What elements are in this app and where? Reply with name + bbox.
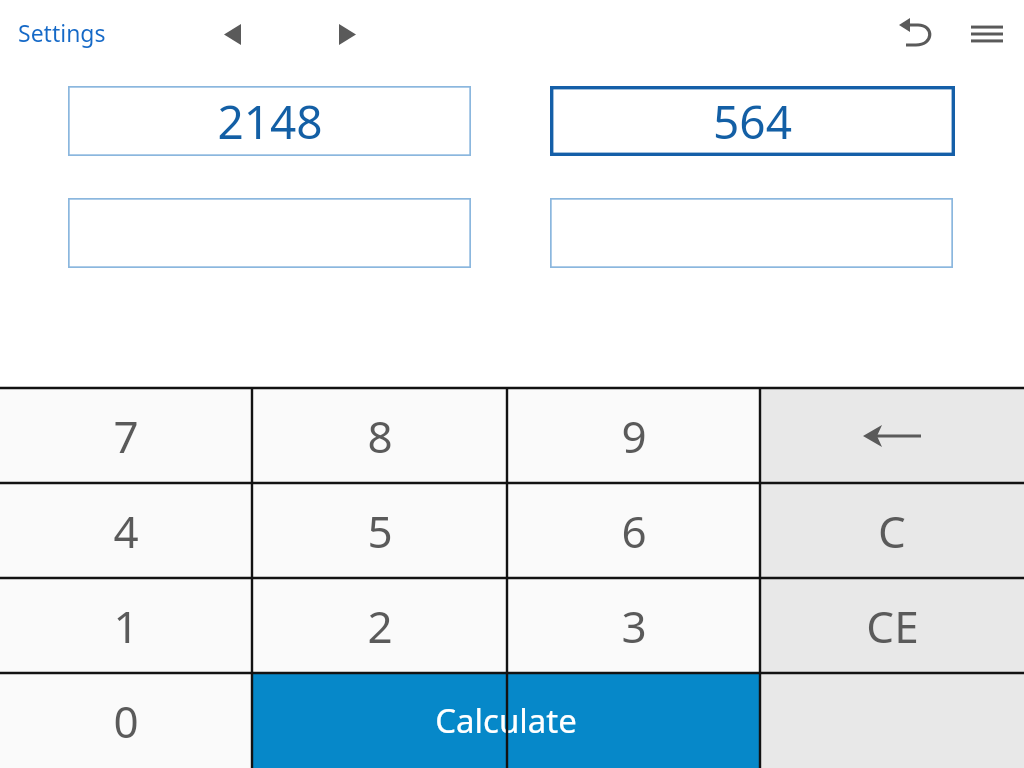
staticText: 5: [367, 501, 393, 561]
button[interactable]: Settings: [8, 11, 116, 54]
staticText: 9: [621, 406, 647, 466]
staticText: 4: [113, 501, 139, 561]
button[interactable]: Undo: [890, 9, 940, 59]
staticText: Calculate: [435, 698, 577, 743]
button[interactable]: 2148: [68, 86, 471, 156]
staticText: 0: [113, 691, 139, 751]
staticText: 6: [621, 501, 647, 561]
button[interactable]: [550, 198, 953, 268]
button[interactable]: 9: [507, 388, 760, 483]
staticText: CE: [866, 596, 919, 656]
staticText: 2148: [217, 90, 323, 153]
button[interactable]: Backspace: [760, 388, 1024, 483]
button[interactable]: Previous: [209, 11, 255, 57]
button[interactable]: 5: [252, 483, 507, 578]
button[interactable]: 564: [550, 86, 955, 156]
button[interactable]: Next: [324, 11, 370, 57]
staticText: 564: [713, 90, 792, 153]
button[interactable]: 1: [0, 578, 252, 673]
button[interactable]: 2: [252, 578, 507, 673]
staticText: 2: [367, 596, 393, 656]
button[interactable]: 3: [507, 578, 760, 673]
staticText: 1: [113, 596, 139, 656]
staticText: Settings: [18, 17, 106, 48]
staticText: 8: [367, 406, 393, 466]
button[interactable]: 0: [0, 673, 252, 768]
staticText: C: [878, 501, 906, 561]
button[interactable]: Calculate: [252, 673, 760, 768]
button[interactable]: 6: [507, 483, 760, 578]
button[interactable]: 4: [0, 483, 252, 578]
button[interactable]: 7: [0, 388, 252, 483]
button[interactable]: [68, 198, 471, 268]
button[interactable]: 8: [252, 388, 507, 483]
staticText: 3: [621, 596, 647, 656]
staticText: 7: [113, 406, 139, 466]
button[interactable]: CE: [760, 578, 1024, 673]
button[interactable]: [760, 673, 1024, 768]
button[interactable]: Menu: [962, 9, 1012, 59]
button[interactable]: C: [760, 483, 1024, 578]
